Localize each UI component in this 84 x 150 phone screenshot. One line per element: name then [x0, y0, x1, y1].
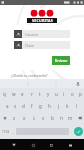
staticText: Clave — [25, 43, 35, 48]
button[interactable]: b — [48, 112, 57, 124]
staticText: ?123 — [2, 129, 10, 134]
staticText: Entrar — [55, 58, 68, 64]
staticText: t — [39, 91, 41, 97]
button[interactable]: p — [76, 88, 84, 100]
button[interactable]: i — [60, 88, 68, 100]
staticText: h — [48, 103, 51, 109]
staticText: q — [3, 91, 6, 97]
button[interactable]: Usuario — [14, 30, 70, 38]
button[interactable]: Backspace — [75, 112, 84, 124]
staticText: b — [51, 115, 54, 121]
button[interactable]: o — [68, 88, 76, 100]
button[interactable]: j — [54, 100, 63, 112]
button[interactable]: x — [19, 112, 29, 124]
button[interactable]: e — [18, 88, 27, 100]
staticText: k — [66, 103, 69, 109]
staticText: , — [13, 129, 15, 134]
button[interactable]: q — [0, 88, 9, 100]
staticText: p — [79, 91, 82, 97]
button[interactable]: Comma — [11, 126, 16, 137]
button[interactable]: ?123 — [1, 126, 11, 137]
staticText: v — [42, 115, 45, 121]
button[interactable]: Back — [9, 140, 19, 150]
button[interactable]: l — [72, 100, 81, 112]
button[interactable]: t — [36, 88, 44, 100]
staticText: s — [14, 103, 17, 109]
button[interactable]: Clave — [14, 41, 70, 49]
button[interactable]: u — [52, 88, 60, 100]
staticText: x — [23, 115, 26, 121]
staticText: f — [31, 103, 33, 109]
button[interactable]: y — [44, 88, 52, 100]
staticText: g — [39, 103, 42, 109]
button[interactable]: v — [39, 112, 48, 124]
staticText: r — [31, 91, 33, 97]
button[interactable]: Voice input — [75, 81, 81, 87]
staticText: SECURITAS — [32, 18, 53, 23]
staticText: m — [68, 115, 73, 121]
staticText: y — [47, 91, 50, 97]
staticText: . — [71, 129, 73, 134]
button[interactable]: f — [27, 100, 36, 112]
button[interactable]: Enter — [74, 127, 83, 136]
staticText: i — [63, 91, 65, 97]
staticText: o — [71, 91, 74, 97]
button[interactable]: h — [45, 100, 54, 112]
staticText: ¿Olvidó su contraseña? — [11, 73, 48, 78]
staticText: n — [60, 115, 63, 121]
button[interactable]: s — [11, 100, 19, 112]
button[interactable]: c — [29, 112, 39, 124]
button[interactable]: n — [57, 112, 66, 124]
button[interactable]: r — [27, 88, 36, 100]
button[interactable]: a — [3, 100, 11, 112]
staticText: u — [55, 91, 58, 97]
button[interactable]: Shift — [0, 112, 9, 124]
button[interactable]: z — [9, 112, 19, 124]
button[interactable]: g — [36, 100, 45, 112]
staticText: w — [12, 91, 16, 97]
button[interactable]: Recents — [46, 140, 56, 150]
button[interactable]: Entrar — [52, 56, 70, 65]
staticText: Usuario — [25, 32, 39, 37]
staticText: a — [6, 103, 9, 109]
staticText: l — [76, 103, 78, 109]
staticText: j — [58, 103, 60, 109]
staticText: z — [13, 115, 16, 121]
button[interactable]: Home — [28, 140, 38, 150]
button[interactable]: ¿Olvidó su contraseña? — [11, 73, 48, 78]
button[interactable]: m — [66, 112, 75, 124]
button[interactable]: d — [19, 100, 27, 112]
button[interactable]: Menu — [65, 140, 75, 150]
button[interactable]: w — [9, 88, 18, 100]
staticText: d — [22, 103, 25, 109]
button[interactable]: k — [63, 100, 72, 112]
staticText: c — [33, 115, 36, 121]
staticText: e — [21, 91, 24, 97]
